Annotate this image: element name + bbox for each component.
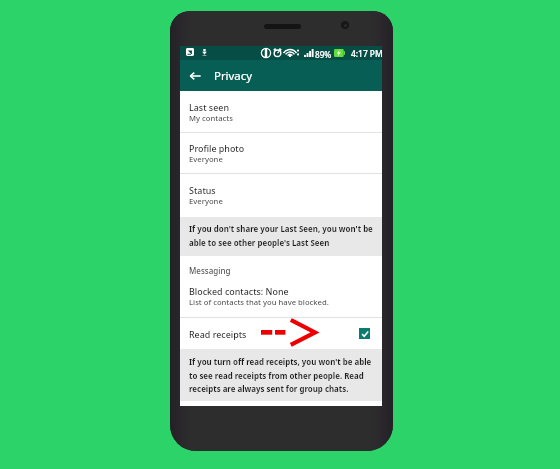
staticText: 4:17 PM	[351, 48, 383, 59]
button[interactable]: Blocked contacts: None	[180, 277, 382, 317]
staticText: List of contacts that you have blocked.	[189, 297, 329, 307]
staticText: Messaging	[189, 265, 231, 276]
button[interactable]: Status	[180, 174, 382, 217]
button[interactable]: Profile photo	[180, 133, 382, 173]
staticText: Profile photo	[189, 142, 245, 154]
staticText: Blocked contacts: None	[189, 285, 289, 297]
staticText: If you turn off read receipts, you won't…	[189, 357, 372, 394]
staticText: 89%	[315, 49, 332, 60]
staticText: My contacts	[189, 113, 233, 123]
button[interactable]: Read receipts enabled	[359, 328, 370, 339]
staticText: Everyone	[189, 196, 223, 206]
button[interactable]: Back	[180, 60, 210, 91]
staticText: Everyone	[189, 154, 223, 164]
button[interactable]: Last seen	[180, 91, 382, 132]
staticText: Read receipts	[189, 328, 247, 340]
staticText: Status	[189, 184, 216, 196]
staticText: Privacy	[214, 68, 252, 84]
staticText: Last seen	[189, 101, 229, 113]
button[interactable]: Read receipts	[180, 318, 382, 349]
staticText: If you don't share your Last Seen, you w…	[189, 224, 373, 248]
